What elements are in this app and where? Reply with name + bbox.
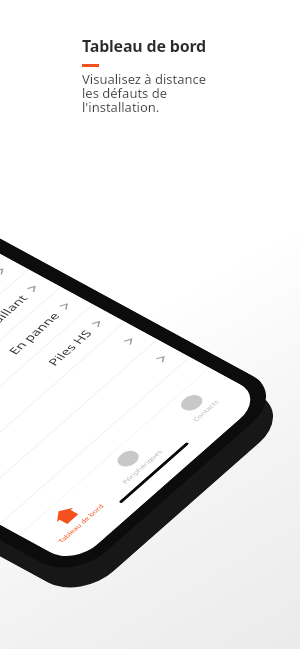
button[interactable]: Piles HS (0, 304, 125, 489)
button[interactable]: Contacts (146, 368, 247, 444)
button[interactable] (0, 339, 189, 524)
staticText: Tableau de bord (56, 503, 106, 544)
staticText: Piles HS (44, 327, 96, 368)
staticText: Tableau de bord (82, 35, 206, 57)
button[interactable] (0, 322, 157, 507)
button[interactable]: En panne (0, 287, 93, 472)
button[interactable]: Tableau de bord (19, 480, 120, 556)
button[interactable]: Défaillant (0, 269, 61, 454)
staticText: Défaillant (0, 292, 31, 340)
staticText: Périphériques (120, 448, 164, 485)
staticText: Visualisez à distance les défauts de l'i… (82, 70, 207, 116)
button[interactable]: Périphériques (83, 424, 184, 500)
staticText: En panne (5, 310, 63, 357)
button[interactable]: Alarme (0, 252, 28, 437)
staticText: Contacts (190, 398, 221, 423)
